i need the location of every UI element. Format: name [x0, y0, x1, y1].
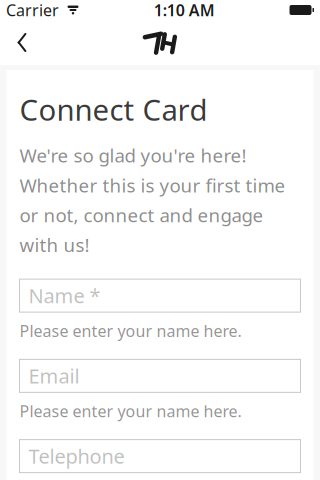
staticText: Carrier	[6, 0, 59, 21]
staticText: Please enter your name here.	[19, 400, 241, 422]
button[interactable]: Name *	[19, 279, 300, 312]
button[interactable]: Email	[19, 359, 300, 392]
staticText: We're so glad you're here! Whether this …	[19, 143, 285, 257]
button[interactable]: Telephone	[19, 440, 300, 473]
staticText: Please enter your name here.	[19, 320, 241, 341]
staticText: Name *	[28, 282, 100, 309]
staticText: Connect Card	[19, 90, 207, 129]
staticText: 1:10 AM	[154, 0, 215, 21]
button[interactable]: Back	[0, 20, 44, 64]
staticText: Telephone	[28, 443, 124, 469]
staticText: Email	[28, 363, 79, 389]
